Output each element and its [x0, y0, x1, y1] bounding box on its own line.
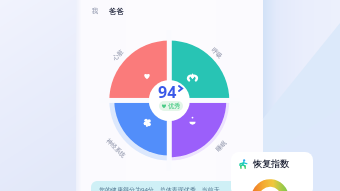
staticText: 94 [158, 81, 177, 103]
staticText: 您的健康得分为94分，总体表现优秀，当前无 [99, 186, 220, 191]
staticText: 优秀 [168, 102, 180, 110]
staticText: 爸爸 [109, 7, 124, 16]
staticText: 我 [92, 7, 99, 15]
button[interactable]: 您的健康得分为94分，总体表现优秀，当前无 [91, 181, 241, 191]
button[interactable]: Running [231, 152, 313, 191]
staticText: 呼吸 [210, 46, 224, 60]
staticText: 神经系统 [105, 137, 127, 159]
staticText: 睡眠 [214, 139, 228, 153]
button[interactable]: 我 [88, 4, 125, 18]
staticText: 心脏 [111, 48, 125, 62]
other: Running [238, 159, 248, 169]
button[interactable]: 94 [149, 80, 191, 114]
staticText: 恢复指数 [253, 158, 289, 169]
